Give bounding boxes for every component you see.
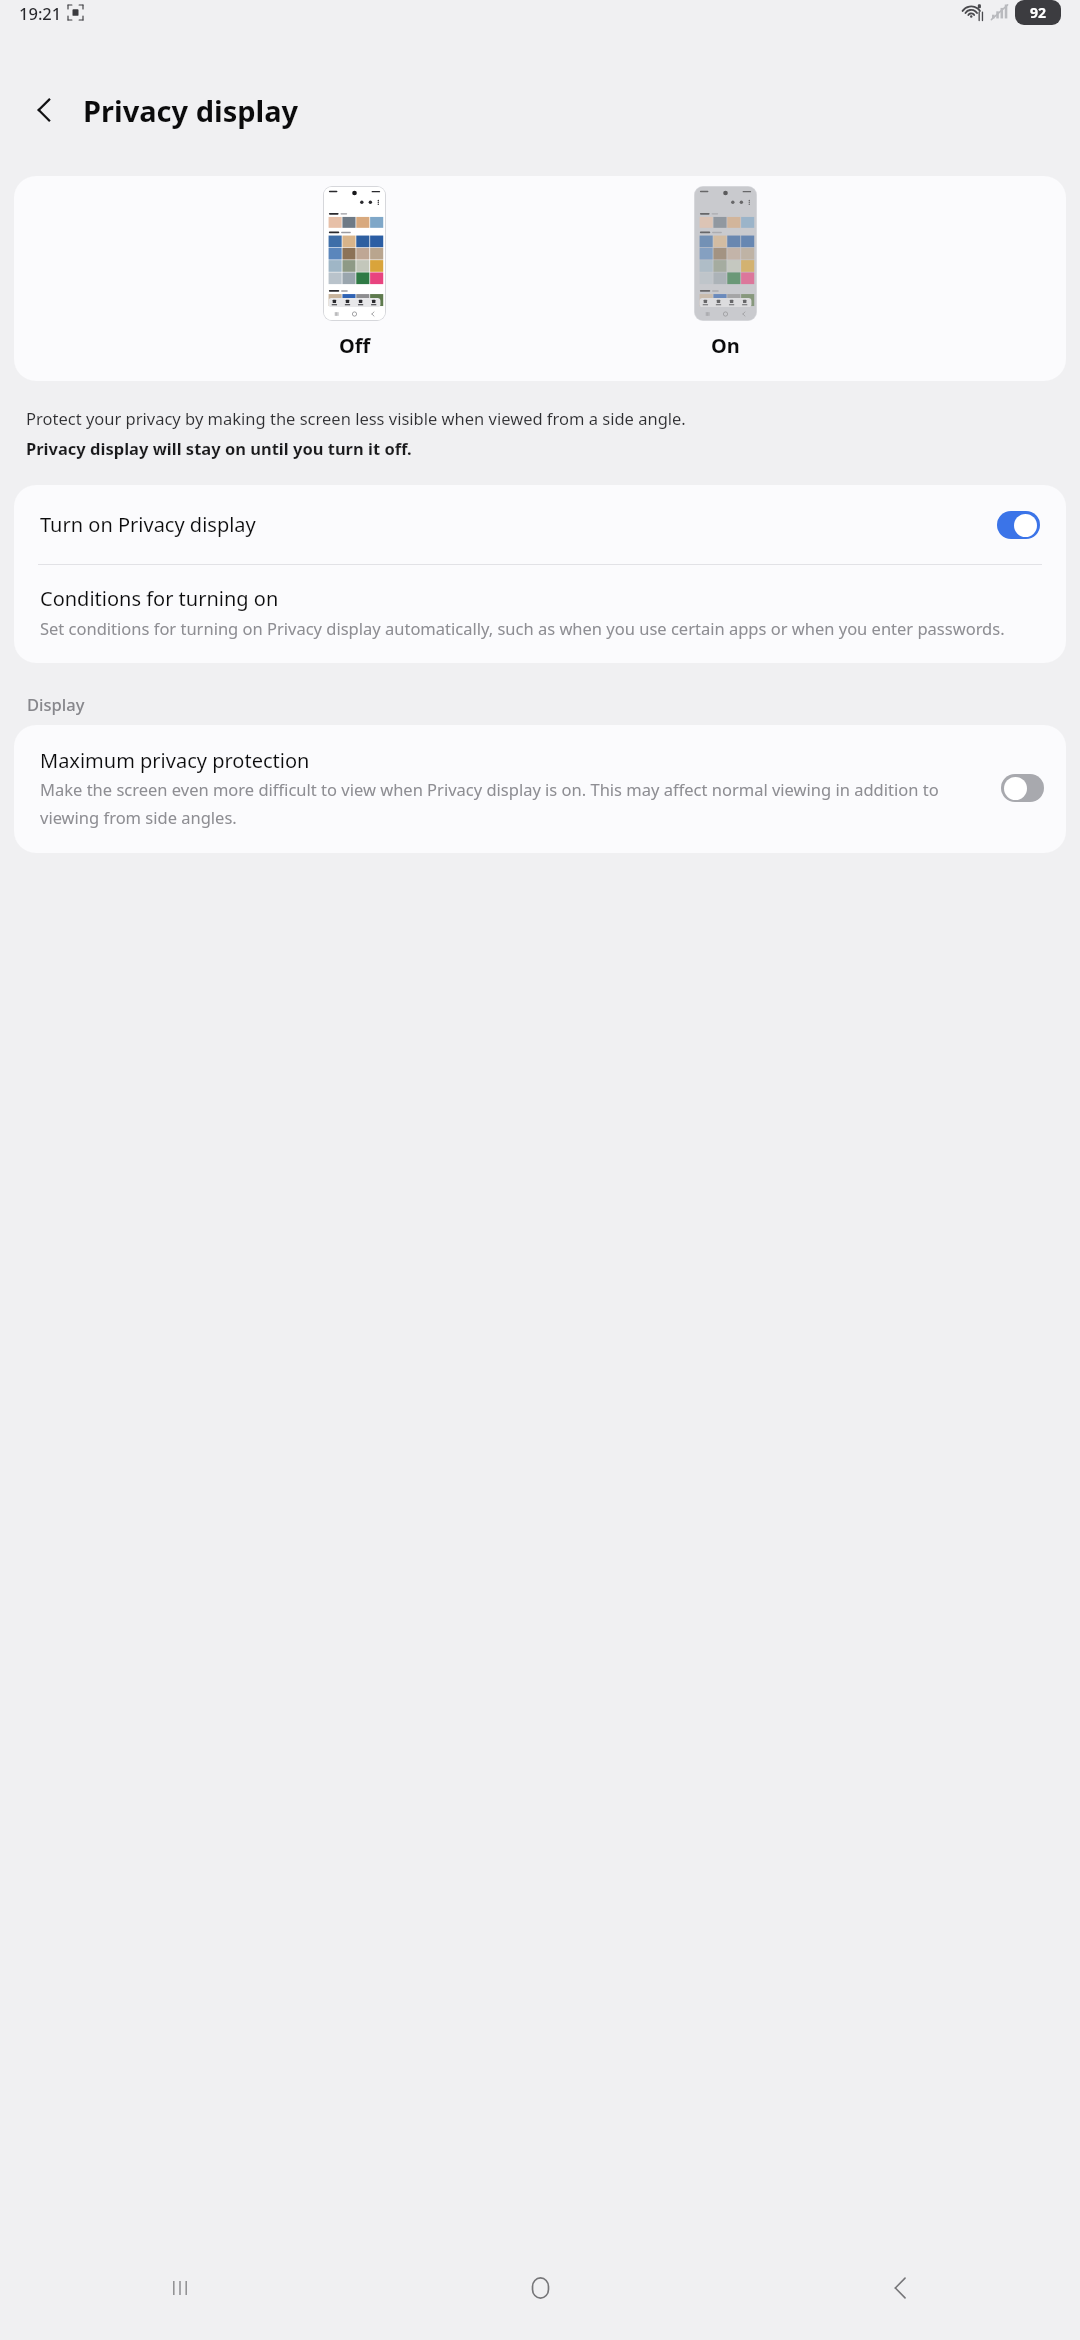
staticText: 92: [1030, 3, 1047, 22]
button[interactable]: Back: [18, 83, 72, 137]
staticText: Set conditions for turning on Privacy di…: [40, 617, 1005, 639]
staticText: 19:21: [19, 2, 62, 24]
staticText: Display: [27, 693, 85, 715]
staticText: Turn on Privacy display: [40, 511, 997, 538]
staticText: Conditions for turning on: [40, 585, 279, 612]
staticText: Protect your privacy by making the scree…: [26, 407, 686, 429]
button[interactable]: Toggle on: [997, 511, 1040, 539]
button[interactable]: Back: [720, 2236, 1080, 2340]
button[interactable]: Home: [360, 2236, 720, 2340]
button[interactable]: Toggle off: [1001, 774, 1044, 802]
staticText: Make the screen even more difficult to v…: [40, 778, 989, 829]
button[interactable]: Maximum privacy protection: [14, 725, 1066, 853]
staticText: Maximum privacy protection: [40, 747, 310, 774]
staticText: Privacy display: [83, 91, 299, 130]
staticText: On: [711, 332, 740, 359]
button[interactable]: Conditions for turning on: [14, 565, 1066, 663]
staticText: Privacy display will stay on until you t…: [26, 437, 412, 459]
button[interactable]: Recents: [0, 2236, 360, 2340]
staticText: Off: [339, 332, 371, 359]
button[interactable]: Turn on Privacy display: [14, 485, 1066, 564]
